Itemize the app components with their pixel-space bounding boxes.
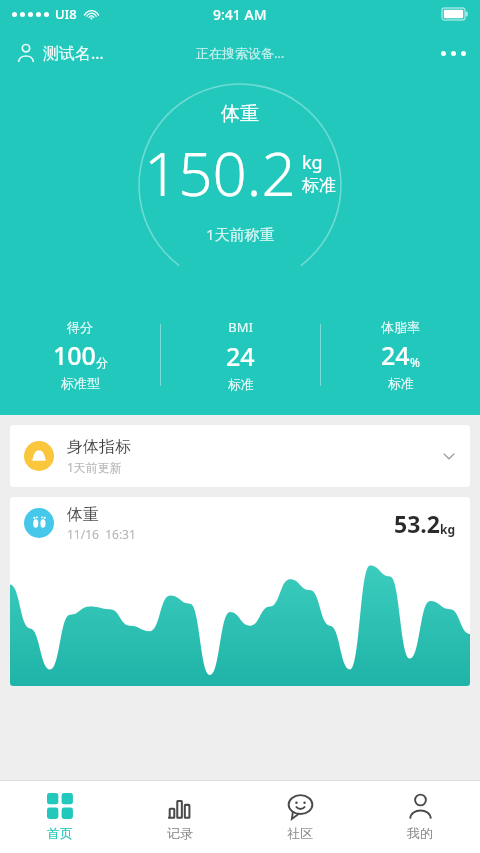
staticText: 分 [96, 355, 108, 370]
button[interactable]: 得分 [0, 315, 160, 395]
staticText: kg [440, 521, 456, 537]
staticText: 体重 [67, 505, 99, 525]
staticText: 53.2 [394, 508, 440, 539]
staticText: % [410, 354, 420, 370]
staticText: 150.2 [144, 132, 296, 214]
staticText: 1天前称重 [206, 224, 275, 244]
staticText: 首页 [47, 825, 73, 841]
staticText: 标准 [228, 376, 254, 392]
staticText: kg [302, 150, 323, 175]
button[interactable]: 体脂率 [321, 315, 480, 395]
staticText: 记录 [167, 825, 193, 841]
staticText: 100 [53, 338, 96, 372]
staticText: 24 [381, 338, 410, 372]
staticText: 正在搜索设备… [196, 44, 285, 62]
staticText: 11/16 16:31 [67, 526, 136, 542]
staticText: BMI [228, 318, 253, 336]
staticText: 9:41 AM [213, 5, 267, 24]
button[interactable]: More options [427, 35, 480, 72]
button[interactable]: 首页 [0, 781, 120, 853]
button[interactable]: 体重 [10, 497, 470, 686]
staticText: 体重 [221, 102, 259, 126]
button[interactable]: 身体指标 [10, 425, 470, 487]
staticText: 社区 [287, 825, 313, 841]
button[interactable]: 测试名… [0, 32, 120, 74]
staticText: 标准 [302, 175, 336, 196]
staticText: 标准型 [61, 375, 100, 391]
staticText: 身体指标 [67, 437, 131, 457]
staticText: UI8 [55, 5, 77, 23]
staticText: 标准 [388, 375, 414, 391]
button[interactable]: 社区 [240, 781, 360, 853]
staticText: 得分 [67, 319, 93, 335]
staticText: 测试名… [43, 42, 104, 64]
staticText: 体脂率 [381, 319, 420, 335]
staticText: 我的 [407, 825, 433, 841]
button[interactable]: 记录 [120, 781, 240, 853]
staticText: 24 [226, 339, 255, 373]
button[interactable]: BMI [161, 314, 320, 396]
staticText: 1天前更新 [67, 459, 122, 475]
button[interactable]: 我的 [360, 781, 480, 853]
